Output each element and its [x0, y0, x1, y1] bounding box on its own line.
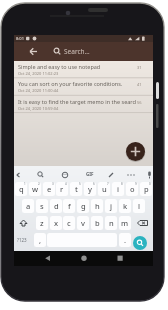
staticText: Oct 24, 2020 10:59:04 — [18, 106, 59, 111]
button[interactable]: ?123 — [17, 237, 27, 243]
staticText: Simple and easy to use notepad — [18, 63, 136, 71]
button[interactable]: a — [22, 199, 34, 213]
staticText: 56 — [137, 100, 142, 105]
staticText: b — [95, 218, 100, 228]
staticText: 3 — [52, 182, 54, 186]
staticText: c — [67, 218, 71, 228]
button[interactable] — [14, 42, 153, 61]
button[interactable]: . — [119, 233, 131, 247]
button[interactable]: n — [105, 216, 117, 230]
staticText: 0 — [149, 182, 151, 186]
staticText: o — [130, 184, 135, 194]
button[interactable]: m — [119, 216, 131, 230]
staticText: . — [124, 235, 127, 245]
staticText: 1 — [24, 182, 26, 186]
staticText: v — [81, 218, 85, 228]
button[interactable]: It is easy to find the target memo in th… — [14, 96, 153, 114]
staticText: 41 — [137, 82, 142, 87]
button[interactable] — [133, 236, 147, 250]
staticText: z — [40, 218, 44, 228]
button[interactable]: z — [36, 216, 48, 230]
button[interactable]: u — [98, 182, 110, 196]
staticText: t — [75, 184, 78, 194]
button[interactable]: o — [126, 182, 138, 196]
staticText: 7 — [107, 182, 109, 186]
staticText: i — [117, 184, 120, 194]
button[interactable]: You can sort on your favorite conditions… — [14, 78, 153, 96]
button[interactable]: v — [77, 216, 89, 230]
button[interactable]: d — [50, 199, 62, 213]
staticText: g — [81, 201, 86, 211]
staticText: f — [68, 201, 71, 211]
staticText: l — [138, 201, 141, 211]
staticText: j — [110, 201, 113, 211]
staticText: 8 — [121, 182, 123, 186]
button[interactable]: g — [77, 199, 89, 213]
staticText: Oct 24, 2020 11:02:23 — [18, 71, 59, 76]
staticText: You can sort on your favorite conditions… — [18, 80, 136, 88]
staticText: , — [39, 235, 42, 245]
staticText: Search… — [64, 47, 90, 56]
staticText: p — [144, 184, 149, 194]
staticText: w — [32, 184, 39, 194]
staticText: GIF — [86, 171, 94, 177]
staticText: m — [121, 218, 129, 228]
button[interactable]: r — [56, 182, 68, 196]
staticText: x — [54, 218, 59, 228]
staticText: r — [60, 184, 64, 194]
staticText: h — [95, 201, 100, 211]
staticText: 8:01 — [16, 36, 24, 41]
staticText: a — [26, 201, 31, 211]
staticText: 2 — [38, 182, 40, 186]
staticText: s — [40, 201, 44, 211]
staticText: d — [54, 201, 59, 211]
staticText: k — [123, 201, 128, 211]
button[interactable]: l — [133, 199, 145, 213]
button[interactable]: j — [105, 199, 117, 213]
button[interactable]: k — [119, 199, 131, 213]
button[interactable]: e — [43, 182, 55, 196]
button[interactable]: w — [29, 182, 41, 196]
button[interactable]: y — [84, 182, 96, 196]
staticText: Oct 24, 2020 11:00:44 — [18, 88, 59, 93]
button[interactable]: i — [112, 182, 124, 196]
staticText: It is easy to find the target memo in th… — [18, 98, 136, 106]
button[interactable]: c — [63, 216, 75, 230]
button[interactable]: p — [140, 182, 152, 196]
button[interactable]: b — [91, 216, 103, 230]
button[interactable]: h — [91, 199, 103, 213]
button[interactable]: , — [34, 233, 46, 247]
staticText: 9 — [135, 182, 137, 186]
staticText: y — [88, 184, 92, 194]
staticText: 6 — [93, 182, 95, 186]
staticText: u — [102, 184, 107, 194]
button[interactable] — [126, 142, 145, 161]
button[interactable]: x — [50, 216, 62, 230]
staticText: 31 — [137, 65, 142, 70]
staticText: 5 — [79, 182, 81, 186]
button[interactable]: q — [15, 182, 27, 196]
staticText: n — [109, 218, 114, 228]
button[interactable]: s — [36, 199, 48, 213]
button[interactable]: Simple and easy to use notepad — [14, 61, 153, 79]
staticText: e — [47, 184, 52, 194]
staticText: q — [19, 184, 24, 194]
staticText: 4 — [65, 182, 67, 186]
button[interactable]: t — [70, 182, 82, 196]
button[interactable]: f — [63, 199, 75, 213]
